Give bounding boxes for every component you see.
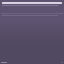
button[interactable]: Primary action (1, 62, 7, 63)
button[interactable] (0, 2, 64, 4)
